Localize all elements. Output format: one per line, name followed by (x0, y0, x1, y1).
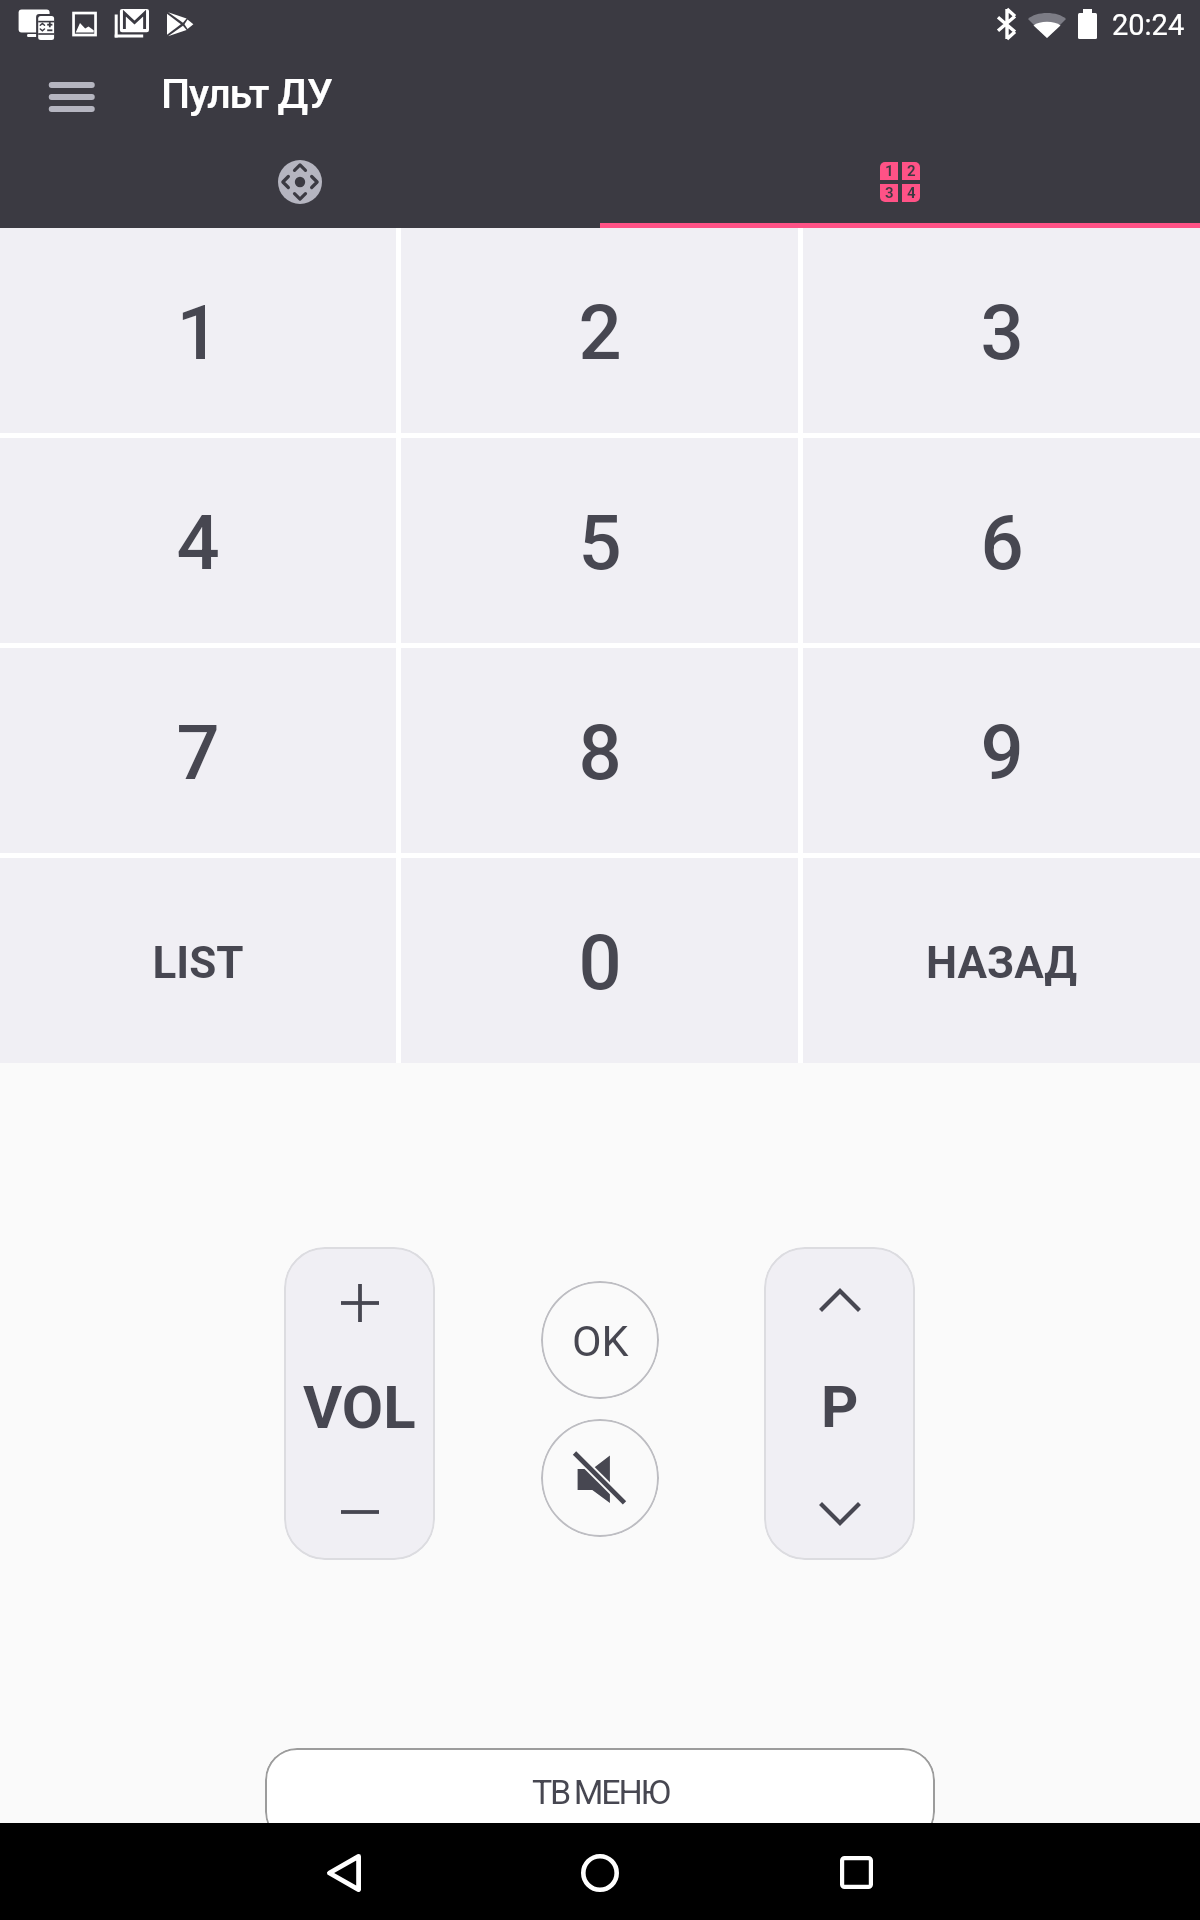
button[interactable]: НАЗАД (803, 858, 1200, 1063)
staticText: VOL (303, 1372, 416, 1442)
button[interactable]: Mute (541, 1419, 659, 1537)
button[interactable]: 4 (0, 438, 396, 643)
staticText: 1 (176, 288, 220, 377)
button[interactable]: Volume up (284, 1247, 435, 1358)
staticText: 2 (907, 162, 916, 180)
staticText: 2 (578, 288, 622, 377)
staticText: 4 (176, 498, 220, 587)
staticText: OK (572, 1316, 629, 1366)
button[interactable]: 3 (803, 228, 1200, 433)
button[interactable]: Number keypad tab (600, 145, 1200, 228)
button[interactable]: 6 (803, 438, 1200, 643)
staticText: 8 (578, 708, 622, 797)
button[interactable]: 0 (401, 858, 798, 1063)
staticText: 0 (578, 918, 622, 1007)
staticText: 20:24 (1112, 8, 1185, 42)
button[interactable]: Volume down (284, 1463, 435, 1560)
button[interactable]: Direction pad tab (0, 145, 600, 228)
staticText: P (821, 1373, 859, 1441)
button[interactable]: 9 (803, 648, 1200, 853)
staticText: 7 (176, 708, 220, 797)
button[interactable]: Channel up (764, 1247, 915, 1352)
staticText: 3 (885, 184, 894, 202)
staticText: 9 (980, 708, 1024, 797)
button[interactable]: 1 (0, 228, 396, 433)
button[interactable]: 5 (401, 438, 798, 643)
button[interactable]: Open navigation menu (12, 55, 132, 145)
staticText: 5 (578, 498, 622, 587)
button[interactable]: Recent apps (808, 1823, 904, 1920)
button[interactable]: Channel down (764, 1468, 915, 1560)
button[interactable]: Back (296, 1823, 392, 1920)
staticText: ТВ МЕНЮ (532, 1772, 669, 1812)
staticText: 6 (980, 498, 1024, 587)
staticText: LIST (152, 937, 244, 989)
button[interactable]: Home (552, 1823, 648, 1920)
staticText: 4 (907, 184, 916, 202)
button[interactable]: 7 (0, 648, 396, 853)
staticText: 1 (885, 162, 894, 180)
button[interactable]: ТВ МЕНЮ (265, 1748, 935, 1844)
button[interactable]: 8 (401, 648, 798, 853)
staticText: НАЗАД (926, 937, 1077, 989)
button[interactable]: LIST (0, 858, 396, 1063)
button[interactable]: 2 (401, 228, 798, 433)
button[interactable]: OK (541, 1281, 659, 1399)
staticText: 3 (980, 288, 1024, 377)
staticText: Пульт ДУ (161, 70, 332, 118)
